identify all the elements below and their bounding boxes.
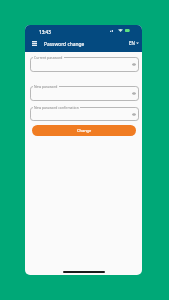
staticText: Change	[77, 128, 92, 133]
button[interactable]	[30, 57, 139, 72]
button[interactable]: EN	[129, 40, 139, 46]
button[interactable]: Menu	[30, 39, 38, 47]
staticText: Current password	[34, 55, 63, 60]
staticText: New password	[34, 84, 58, 89]
staticText: 13:43	[39, 29, 51, 35]
button[interactable]: Change	[32, 125, 136, 136]
button[interactable]	[30, 107, 139, 121]
button[interactable]	[30, 86, 139, 101]
staticText: EN	[129, 40, 135, 46]
staticText: Password change	[44, 41, 85, 48]
staticText: New password confirmation	[34, 105, 79, 110]
